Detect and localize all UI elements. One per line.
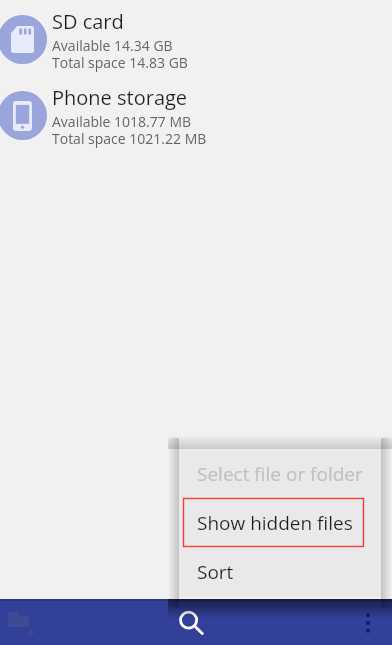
button[interactable]: Show hidden files [179,498,381,547]
staticText: Select file or folder [197,461,363,487]
staticText: Available 1018.77 MB Total space 1021.22… [52,112,207,148]
staticText: Show hidden files [197,510,353,536]
staticText: SD card [52,8,124,35]
button[interactable]: Sort [179,547,381,596]
staticText: Sort [197,559,234,585]
button[interactable]: More options [344,601,392,645]
button[interactable]: Search [167,601,215,645]
button[interactable]: Phone storage [0,76,392,152]
staticText: Available 14.34 GB Total space 14.83 GB [52,36,188,72]
staticText: Phone storage [52,84,188,111]
button[interactable]: SD card [0,0,392,76]
button[interactable]: New folder [0,601,46,645]
button[interactable]: Select file or folder [179,449,381,498]
